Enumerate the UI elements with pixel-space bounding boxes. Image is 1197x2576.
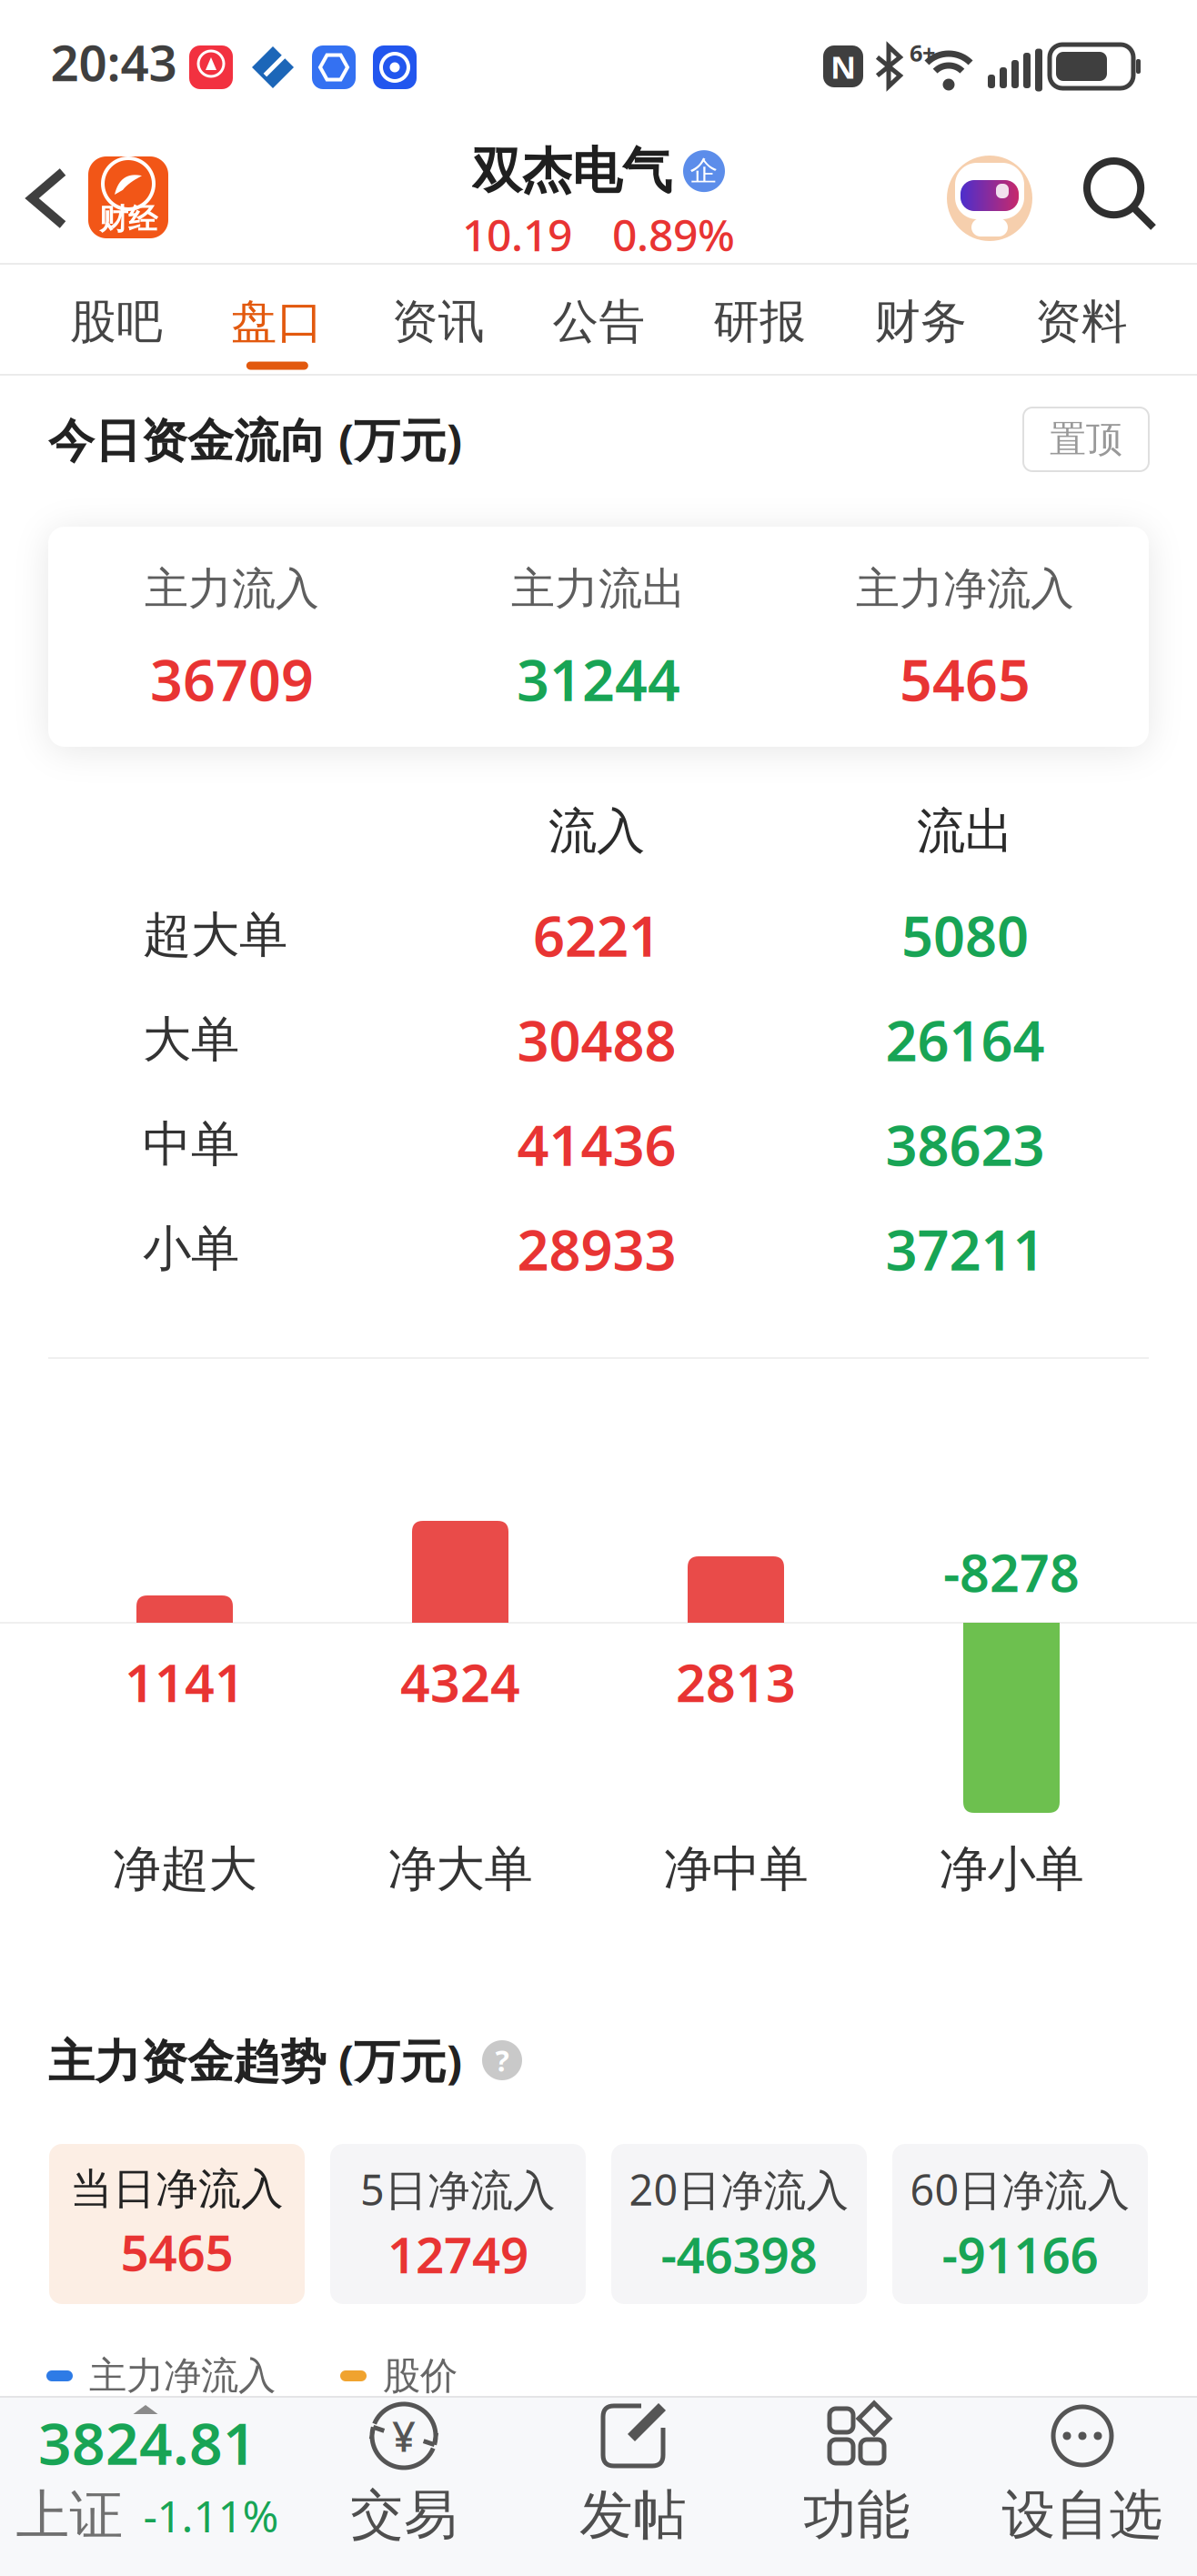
- staticText: 研报: [713, 294, 806, 350]
- button[interactable]: 财务: [874, 267, 967, 377]
- staticText: 盘口: [231, 294, 324, 350]
- staticText: 今日资金流向 (万元): [48, 409, 462, 470]
- button[interactable]: 设自选: [973, 2397, 1192, 2551]
- staticText: 双杰电气: [472, 141, 672, 202]
- staticText: 资料: [1035, 294, 1128, 350]
- staticText: 2813: [676, 1647, 796, 1716]
- staticText: 1141: [125, 1647, 245, 1716]
- staticText: 12749: [387, 2221, 528, 2287]
- staticText: 30488: [517, 1003, 676, 1077]
- staticText: 净大单: [388, 1839, 533, 1899]
- staticText: 38623: [885, 1107, 1045, 1181]
- staticText: 净中单: [664, 1839, 808, 1899]
- staticText: 20:43: [50, 29, 177, 95]
- button[interactable]: 发帖: [524, 2397, 742, 2551]
- button[interactable]: 智能助手: [947, 156, 1032, 241]
- button[interactable]: 盘口: [231, 267, 324, 377]
- staticText: 0.89%: [612, 205, 735, 263]
- staticText: 大单: [143, 1010, 239, 1069]
- staticText: 4324: [400, 1647, 520, 1716]
- staticText: 流出: [917, 802, 1013, 861]
- staticText: 37211: [885, 1212, 1045, 1286]
- staticText: ?: [495, 2041, 509, 2080]
- staticText: 置顶: [1050, 417, 1122, 462]
- staticText: ¥: [392, 2409, 416, 2463]
- button[interactable]: 财经: [88, 156, 168, 238]
- staticText: -8278: [943, 1537, 1080, 1606]
- button[interactable]: ¥: [295, 2397, 513, 2551]
- button[interactable]: 3824.81: [6, 2408, 288, 2544]
- staticText: 超大单: [143, 905, 287, 965]
- staticText: 26164: [885, 1003, 1045, 1077]
- staticText: 公告: [553, 294, 645, 350]
- staticText: 主力资金趋势 (万元): [48, 2030, 462, 2091]
- staticText: 10.19: [462, 205, 572, 263]
- button[interactable]: 研报: [713, 267, 806, 377]
- button[interactable]: 5日净流入: [330, 2144, 586, 2304]
- staticText: 41436: [517, 1107, 676, 1181]
- button[interactable]: 资料: [1035, 267, 1128, 377]
- staticText: -46398: [661, 2221, 817, 2287]
- staticText: 交易: [350, 2482, 458, 2548]
- staticText: -91166: [942, 2221, 1098, 2287]
- button[interactable]: Search: [1077, 151, 1164, 238]
- button[interactable]: 股吧: [70, 267, 163, 377]
- staticText: 流入: [548, 802, 645, 861]
- staticText: 当日净流入: [70, 2163, 284, 2215]
- staticText: N: [830, 45, 856, 87]
- staticText: 功能: [803, 2482, 910, 2548]
- button[interactable]: 公告: [553, 267, 645, 377]
- staticText: 5465: [900, 641, 1031, 717]
- staticText: 5080: [901, 898, 1029, 972]
- staticText: 6+: [910, 37, 935, 68]
- staticText: 5465: [121, 2219, 233, 2285]
- staticText: 5日净流入: [360, 2161, 556, 2217]
- staticText: 6221: [533, 898, 660, 972]
- button[interactable]: 功能: [748, 2397, 966, 2551]
- button[interactable]: 资讯: [392, 267, 485, 377]
- staticText: 净超大: [112, 1839, 257, 1899]
- staticText: 股价: [383, 2353, 458, 2399]
- staticText: 资讯: [392, 294, 485, 350]
- staticText: 主力流入: [145, 562, 319, 616]
- staticText: 60日净流入: [910, 2161, 1130, 2217]
- button[interactable]: 60日净流入: [892, 2144, 1148, 2304]
- staticText: 中单: [143, 1114, 239, 1174]
- staticText: 36709: [150, 641, 314, 717]
- staticText: 主力净流入: [856, 562, 1074, 616]
- staticText: 发帖: [579, 2482, 687, 2548]
- button[interactable]: 20日净流入: [611, 2144, 867, 2304]
- staticText: 3824.81: [38, 2404, 256, 2481]
- staticText: 小单: [143, 1219, 239, 1279]
- staticText: 股吧: [70, 294, 163, 350]
- button[interactable]: 置顶: [1023, 408, 1149, 471]
- staticText: 净小单: [939, 1839, 1084, 1899]
- staticText: 企: [690, 154, 718, 188]
- button[interactable]: Back: [17, 154, 77, 243]
- staticText: 财经: [99, 201, 157, 237]
- staticText: 上证: [16, 2483, 123, 2548]
- staticText: 主力流出: [511, 562, 686, 616]
- staticText: -1.11%: [143, 2486, 279, 2544]
- staticText: 31244: [517, 641, 680, 717]
- button[interactable]: 当日净流入: [49, 2144, 305, 2304]
- staticText: 28933: [517, 1212, 676, 1286]
- staticText: 主力净流入: [89, 2353, 276, 2399]
- staticText: 20日净流入: [629, 2161, 849, 2217]
- staticText: 财务: [874, 294, 967, 350]
- staticText: 设自选: [1002, 2482, 1163, 2548]
